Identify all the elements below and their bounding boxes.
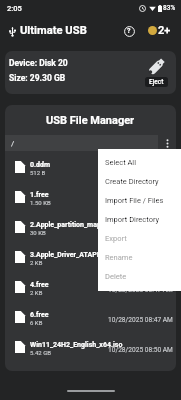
button[interactable]: Export [98,229,181,248]
staticText: Delete [105,272,127,281]
button[interactable]: 3.Apple_Driver_ATAPI [5,241,176,271]
button[interactable]: 4.free [5,271,176,301]
staticText: 2.Apple_partition_map [30,221,101,229]
staticText: 10/28/2025 08:47 AM [108,316,173,324]
button[interactable]: 2.Apple_partition_map [5,211,176,241]
staticText: 5.42 GB [30,349,52,356]
staticText: 10/28/2025 08:47 AM [108,286,173,294]
button[interactable]: Eject [145,58,168,87]
staticText: ? [127,27,131,35]
staticText: 4.free [30,281,49,289]
staticText: 30 KB [30,229,46,236]
staticText: Ultimate USB [20,24,87,37]
button[interactable]: Help [120,22,138,40]
staticText: 2 KB [30,289,43,296]
staticText: Win11_24H2_English_x64.iso [30,341,123,349]
button[interactable]: Win11_24H2_English_x64.iso [5,331,176,361]
staticText: 0.ddm [30,161,50,169]
staticText: Device: Disk 20 [9,58,68,68]
button[interactable]: 2+ [147,21,172,40]
staticText: 6.free [30,311,49,319]
button[interactable]: Rename [98,248,181,267]
staticText: 83% [163,4,176,12]
button[interactable]: 0.ddm [5,151,176,181]
button[interactable]: 6.free [5,301,176,331]
staticText: Select All [105,158,137,167]
button[interactable]: 1.free [5,181,176,211]
staticText: 2+ [158,24,171,37]
staticText: Rename [105,253,133,262]
staticText: 6 KB [30,319,43,326]
staticText: Import File / Files [105,196,164,205]
staticText: USB File Manager [46,114,135,127]
staticText: 1.50 KB [30,199,51,206]
staticText: Size: 29.30 GB [9,73,66,83]
button[interactable]: More options [158,135,176,151]
staticText: 2:05 [7,4,22,13]
staticText: 2 KB [30,259,43,266]
staticText: / [11,139,15,148]
staticText: 3.Apple_Driver_ATAPI [30,251,99,259]
staticText: 512 B [30,169,46,176]
button[interactable]: Import File / Files [98,191,181,210]
staticText: Create Directory [105,177,159,186]
button[interactable]: Delete [98,267,181,286]
staticText: 10/28/2025 08:50 AM [108,346,173,354]
button[interactable]: Create Directory [98,172,181,191]
staticText: Eject [149,78,164,86]
staticText: Import Directory [105,215,160,224]
button[interactable]: / [5,135,158,151]
button[interactable]: Select All [98,153,181,172]
button[interactable]: Import Directory [98,210,181,229]
staticText: Export [105,234,127,243]
staticText: 1.free [30,191,49,199]
